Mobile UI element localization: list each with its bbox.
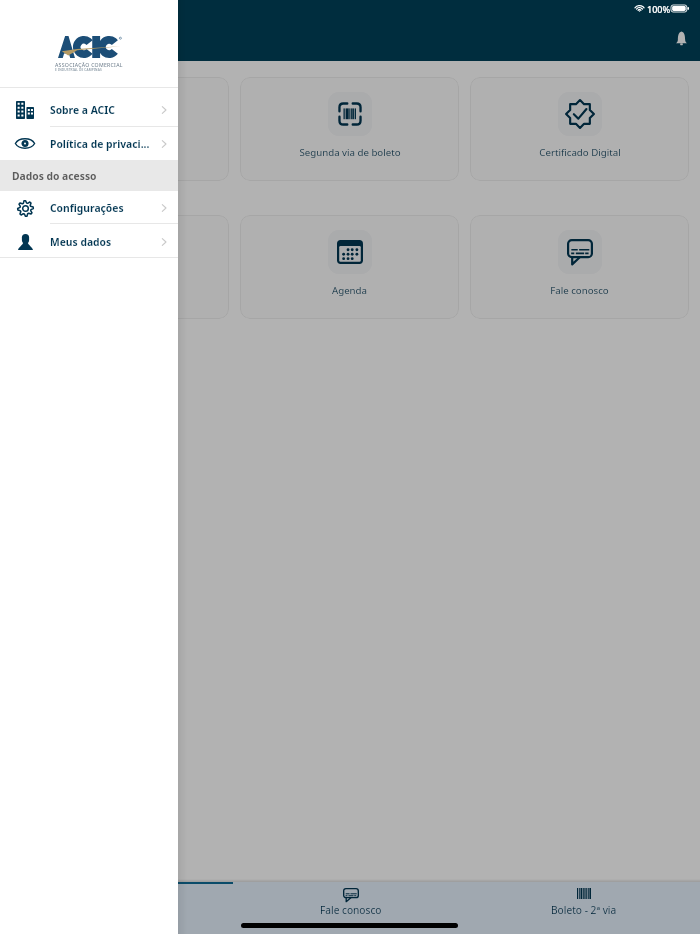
button[interactable]: Boleto - 2ª via: [467, 882, 700, 922]
staticText: Fale conosco: [550, 284, 609, 297]
staticText: Carteirinha: [95, 146, 146, 159]
staticText: Política de privaci...: [50, 137, 150, 151]
staticText: ASSOCIAÇÃO COMERCIAL: [55, 61, 123, 68]
staticText: 100%: [647, 3, 671, 15]
button[interactable]: Meus dados: [0, 224, 178, 257]
staticText: Configurações: [50, 201, 124, 215]
staticText: Boleto - 2ª via: [551, 903, 617, 917]
staticText: Agenda: [332, 284, 367, 297]
button[interactable]: Fale conosco: [234, 882, 467, 922]
staticText: Certificado Digital: [539, 146, 621, 159]
button[interactable]: Convênios: [11, 215, 229, 319]
staticText: Meus dados: [50, 235, 112, 249]
staticText: Segunda via de boleto: [299, 146, 401, 159]
button[interactable]: Agenda: [240, 215, 459, 319]
button[interactable]: Segunda via de boleto: [240, 77, 459, 181]
button[interactable]: Notificações: [664, 21, 698, 55]
button[interactable]: Carteirinha: [0, 882, 234, 922]
button[interactable]: Fale conosco: [470, 215, 689, 319]
button[interactable]: Política de privaci...: [0, 127, 178, 160]
button[interactable]: Certificado Digital: [470, 77, 689, 181]
button[interactable]: Sobre a ACIC: [0, 88, 178, 126]
button[interactable]: Configurações: [0, 191, 178, 223]
staticText: Sobre a ACIC: [50, 103, 115, 117]
staticText: E INDUSTRIAL DE CAMPINAS: [55, 68, 102, 72]
button[interactable]: Carteirinha: [11, 77, 229, 181]
staticText: Fale conosco: [320, 903, 382, 917]
staticText: Dados do acesso: [12, 169, 97, 183]
